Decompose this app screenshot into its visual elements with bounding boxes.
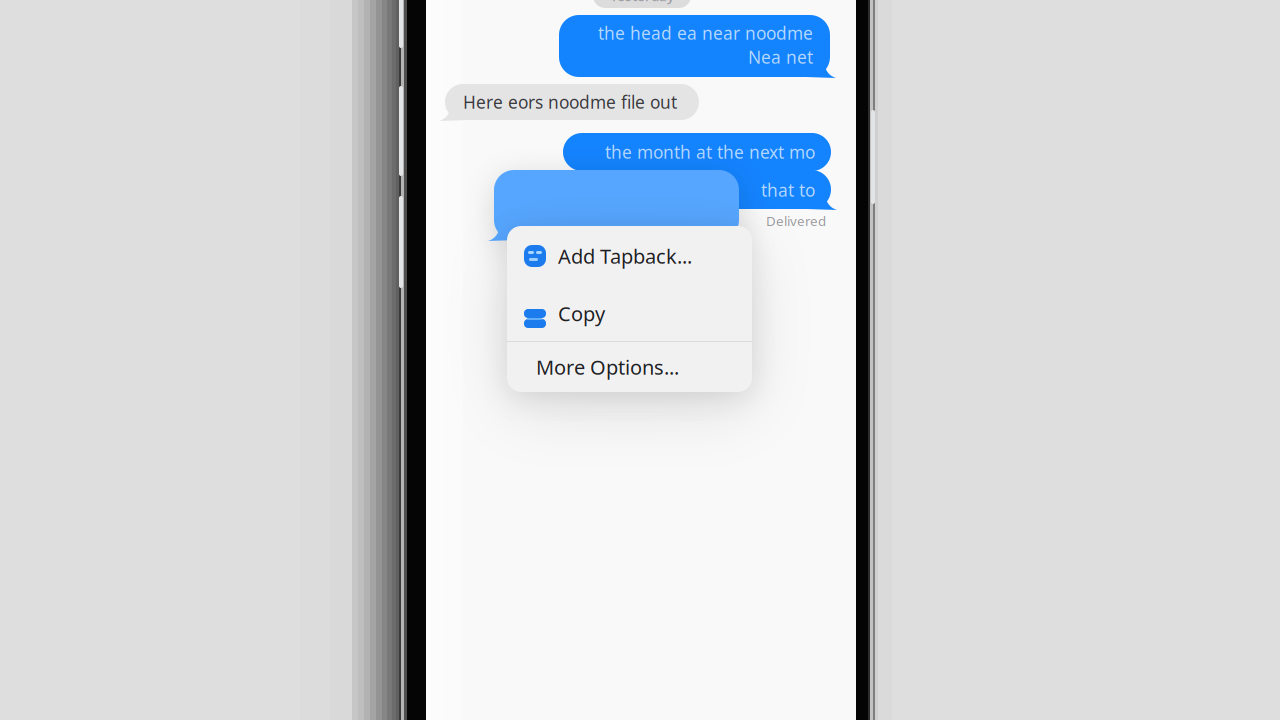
staticText: Copy (558, 300, 605, 327)
button[interactable]: Copy (507, 286, 752, 341)
button[interactable]: Selected message (494, 170, 739, 240)
button[interactable]: Add Tapback... (507, 226, 752, 286)
staticText: the head ea near noodme (598, 21, 813, 44)
staticText: Yesterday (610, 0, 674, 5)
button[interactable]: More Options... (507, 342, 752, 392)
staticText: that to (761, 178, 815, 201)
staticText: Delivered (766, 212, 826, 230)
staticText: the month at the next mo (605, 140, 815, 163)
staticText: Nea net (748, 45, 813, 68)
button[interactable]: the head ea near noodme (559, 15, 830, 77)
button[interactable]: Here eors noodme file out (445, 84, 699, 120)
button[interactable]: the month at the next mo (563, 133, 831, 171)
staticText: Add Tapback... (558, 243, 692, 269)
staticText: Here eors noodme file out (463, 90, 677, 113)
button[interactable]: that to (563, 170, 831, 209)
staticText: More Options... (536, 354, 679, 380)
